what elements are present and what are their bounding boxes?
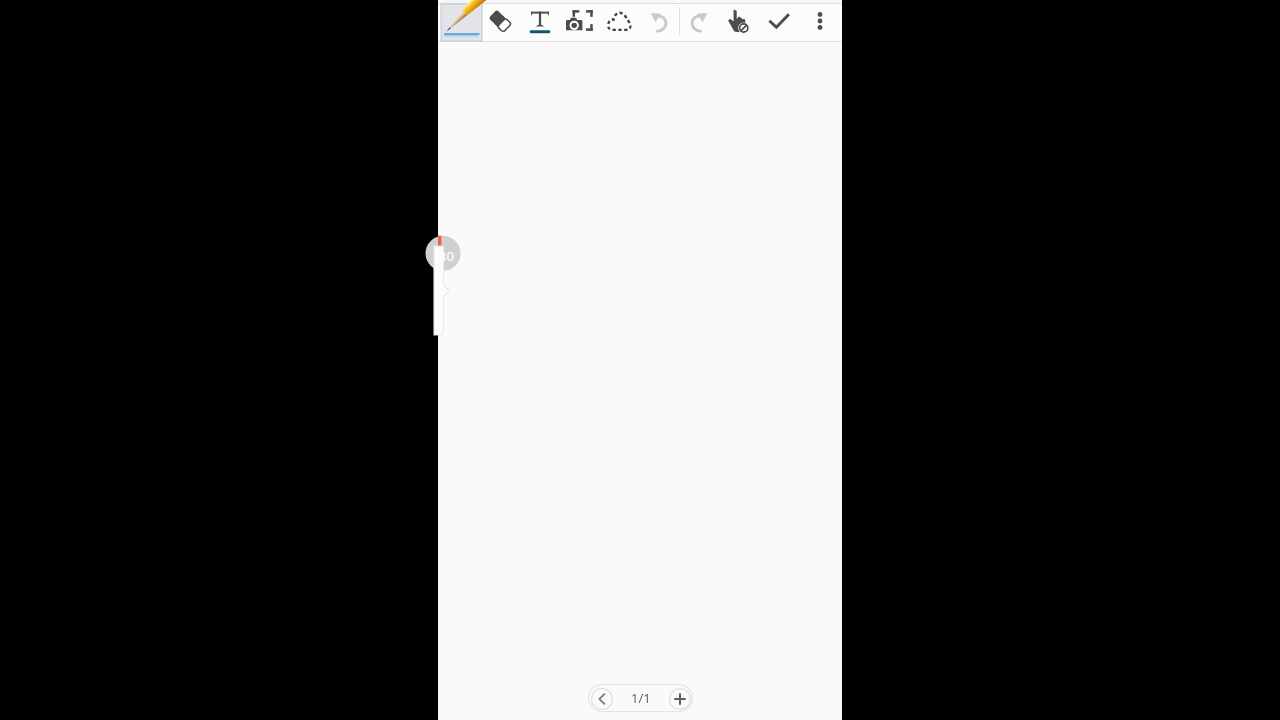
button[interactable]: Add page	[666, 685, 693, 712]
staticText: 30	[439, 247, 454, 265]
button[interactable]: Palm rejection	[719, 0, 757, 41]
button[interactable]: Text	[521, 0, 559, 41]
button[interactable]: Done	[760, 0, 798, 41]
button[interactable]: Redo	[679, 0, 717, 41]
button[interactable]: 1/1	[615, 684, 666, 712]
button[interactable]: Pen settings, width 30	[438, 228, 474, 342]
button[interactable]: Camera	[560, 0, 598, 41]
button[interactable]: Undo	[641, 0, 679, 41]
button[interactable]: Previous page	[588, 685, 615, 712]
button[interactable]: Eraser	[481, 0, 519, 41]
button[interactable]: Pen tool	[441, 4, 482, 41]
button[interactable]: More options	[801, 0, 839, 41]
button[interactable]: Lasso select	[600, 0, 638, 41]
staticText: 1/1	[631, 689, 651, 707]
